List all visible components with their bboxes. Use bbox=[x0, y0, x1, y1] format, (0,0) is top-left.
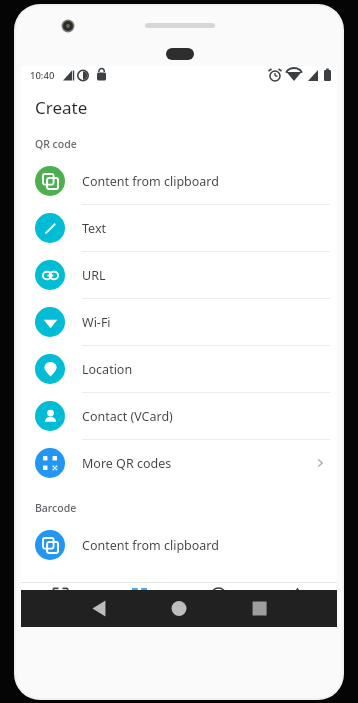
button[interactable]: Wi-Fi bbox=[21, 299, 337, 346]
staticText: Barcode bbox=[35, 501, 77, 515]
button[interactable]: Location bbox=[21, 346, 337, 393]
button[interactable]: Scan bbox=[21, 583, 100, 624]
staticText: Content from clipboard bbox=[82, 173, 327, 190]
button[interactable]: Content from clipboard bbox=[21, 158, 337, 205]
button[interactable]: More QR codes bbox=[21, 440, 337, 486]
button[interactable]: Create bbox=[100, 583, 179, 624]
staticText: 10:40 bbox=[30, 69, 55, 82]
button[interactable]: History bbox=[179, 583, 258, 624]
staticText: URL bbox=[82, 267, 327, 284]
button[interactable]: Contact (VCard) bbox=[21, 393, 337, 440]
staticText: Contact (VCard) bbox=[82, 408, 327, 425]
staticText: Wi-Fi bbox=[82, 314, 327, 331]
button[interactable]: Text bbox=[21, 205, 337, 252]
staticText: QR code bbox=[35, 137, 77, 151]
staticText: Content from clipboard bbox=[82, 537, 327, 554]
staticText: Text bbox=[82, 220, 327, 237]
staticText: More QR codes bbox=[82, 455, 313, 472]
button[interactable]: Content from clipboard bbox=[21, 522, 337, 568]
button[interactable]: Settings bbox=[258, 583, 337, 624]
button[interactable]: URL bbox=[21, 252, 337, 299]
staticText: Create bbox=[35, 96, 88, 119]
staticText: Location bbox=[82, 361, 327, 378]
